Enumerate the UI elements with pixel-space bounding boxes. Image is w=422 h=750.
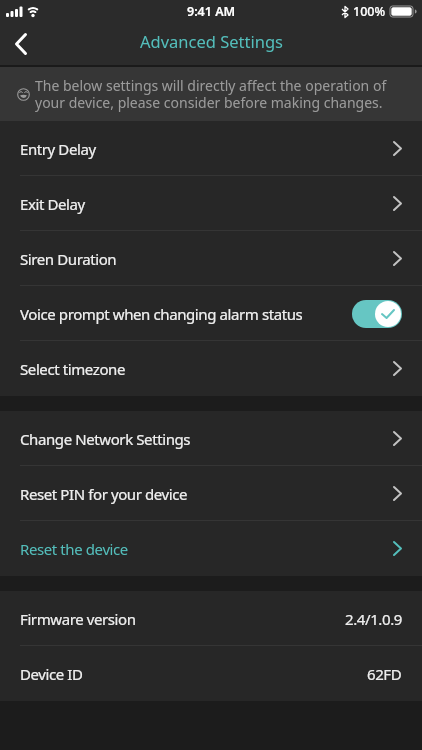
button[interactable]: Reset PIN for your device xyxy=(0,466,422,521)
button[interactable]: Change Network Settings xyxy=(0,411,422,466)
button[interactable]: Entry Delay xyxy=(0,121,422,176)
staticText: Device ID xyxy=(20,664,83,684)
staticText: Reset PIN for your device xyxy=(20,484,188,504)
staticText: Siren Duration xyxy=(20,249,117,269)
staticText: Advanced Settings xyxy=(140,30,283,52)
staticText: 9:41 AM xyxy=(187,3,236,20)
button[interactable]: Voice prompt when changing alarm status xyxy=(0,286,422,341)
staticText: Firmware version xyxy=(20,609,136,629)
button[interactable]: Reset the device xyxy=(0,521,422,576)
button[interactable]: Select timezone xyxy=(0,341,422,396)
button[interactable]: Firmware version xyxy=(0,591,422,646)
staticText: Select timezone xyxy=(20,359,126,379)
staticText: 62FD xyxy=(367,664,402,684)
staticText: Voice prompt when changing alarm status xyxy=(20,304,303,324)
button[interactable] xyxy=(352,300,402,328)
staticText: 100% xyxy=(353,3,386,20)
staticText: Change Network Settings xyxy=(20,429,191,449)
button[interactable]: Device ID xyxy=(0,646,422,701)
staticText: The below settings will directly affect … xyxy=(35,76,387,112)
button[interactable] xyxy=(15,33,27,55)
button[interactable]: Exit Delay xyxy=(0,176,422,231)
staticText: Reset the device xyxy=(20,539,128,559)
staticText: 2.4/1.0.9 xyxy=(345,609,402,629)
staticText: Exit Delay xyxy=(20,194,85,214)
staticText: Entry Delay xyxy=(20,139,96,159)
button[interactable]: Siren Duration xyxy=(0,231,422,286)
